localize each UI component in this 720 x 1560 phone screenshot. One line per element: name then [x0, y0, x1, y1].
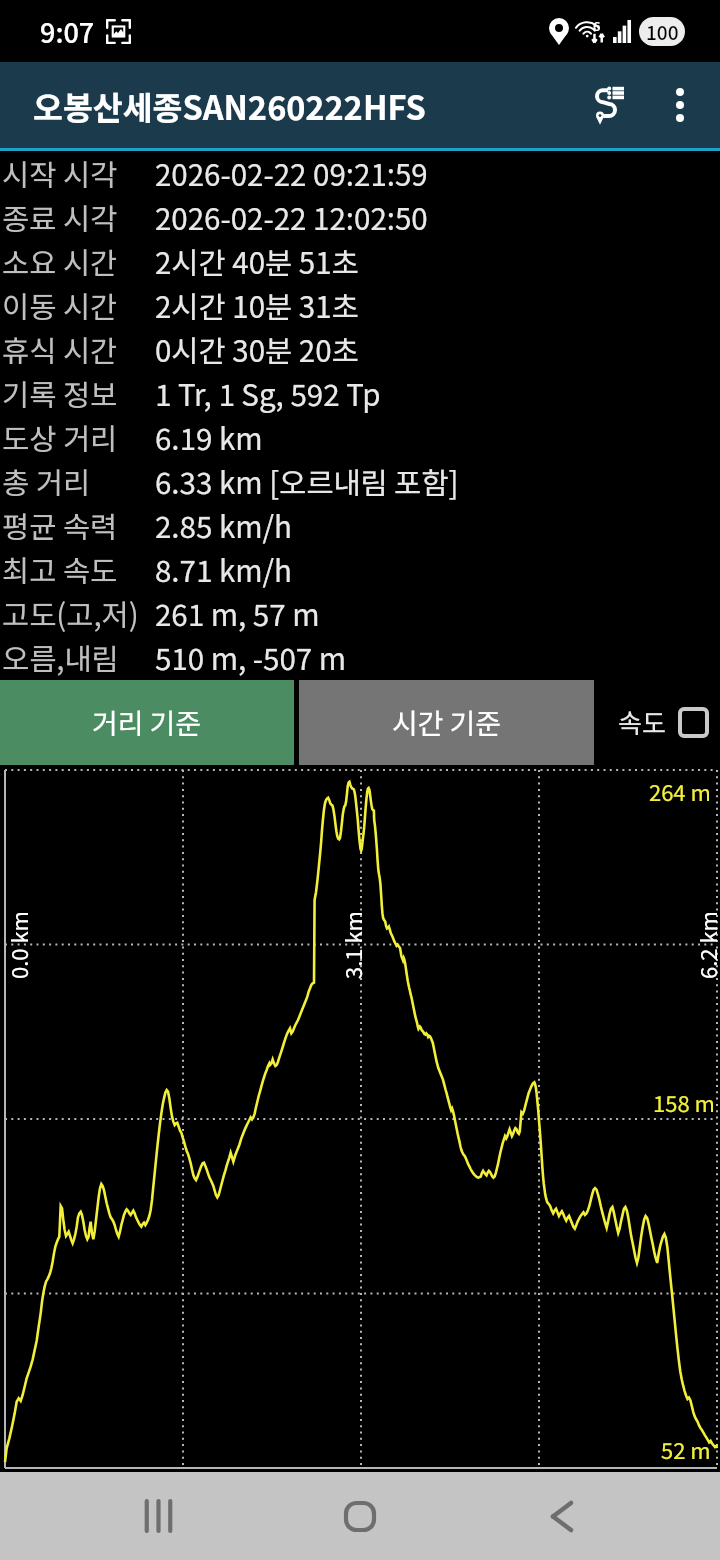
staticText: 0.0 km	[2, 911, 34, 979]
button[interactable]: Home	[320, 1476, 400, 1556]
staticText: 고도(고,저)	[2, 592, 155, 635]
staticText: 8.71 km/h	[155, 548, 292, 591]
staticText: 100	[646, 18, 679, 46]
staticText: 52 m	[661, 1433, 711, 1465]
staticText: 0시간 30분 20초	[155, 328, 359, 371]
button[interactable]: More options	[652, 77, 708, 133]
staticText: 시간 기준	[392, 702, 502, 743]
staticText: 261 m, 57 m	[155, 592, 320, 635]
staticText: 최고 속도	[2, 548, 155, 591]
staticText: 시작 시각	[2, 152, 155, 195]
staticText: 속도	[618, 703, 666, 741]
staticText: 총 거리	[2, 460, 155, 503]
staticText: 2026-02-22 09:21:59	[155, 152, 428, 195]
staticText: 9:07	[40, 12, 95, 51]
button[interactable]: Route list	[582, 77, 638, 133]
staticText: 158 m	[653, 1086, 715, 1118]
button[interactable]: 거리 기준	[0, 680, 294, 765]
staticText: 6.19 km	[155, 416, 263, 459]
button[interactable]: 속도	[600, 679, 720, 765]
staticText: 3.1 km	[336, 911, 368, 979]
staticText: 평균 속력	[2, 504, 155, 547]
staticText: 휴식 시간	[2, 328, 155, 371]
staticText: 2시간 40분 51초	[155, 240, 359, 283]
staticText: 6	[593, 16, 601, 35]
staticText: 이동 시간	[2, 284, 155, 327]
staticText: 오름,내림	[2, 636, 155, 679]
button[interactable]: 시간 기준	[299, 680, 594, 765]
staticText: 510 m, -507 m	[155, 636, 347, 679]
staticText: 6.33 km [오르내림 포함]	[155, 460, 459, 503]
staticText: 6.2 km	[691, 911, 720, 979]
staticText: 기록 정보	[2, 372, 155, 415]
button[interactable]: Back	[521, 1476, 601, 1556]
staticText: 2026-02-22 12:02:50	[155, 196, 428, 239]
staticText: 1 Tr, 1 Sg, 592 Tp	[155, 372, 381, 415]
staticText: 소요 시간	[2, 240, 155, 283]
staticText: 종료 시각	[2, 196, 155, 239]
staticText: 264 m	[649, 775, 711, 807]
staticText: 도상 거리	[2, 416, 155, 459]
staticText: 2.85 km/h	[155, 504, 292, 547]
button[interactable]: Recent apps	[118, 1476, 198, 1556]
staticText: 오봉산세종SAN260222HFS	[33, 82, 426, 129]
staticText: 거리 기준	[92, 702, 202, 743]
staticText: 2시간 10분 31초	[155, 284, 359, 327]
